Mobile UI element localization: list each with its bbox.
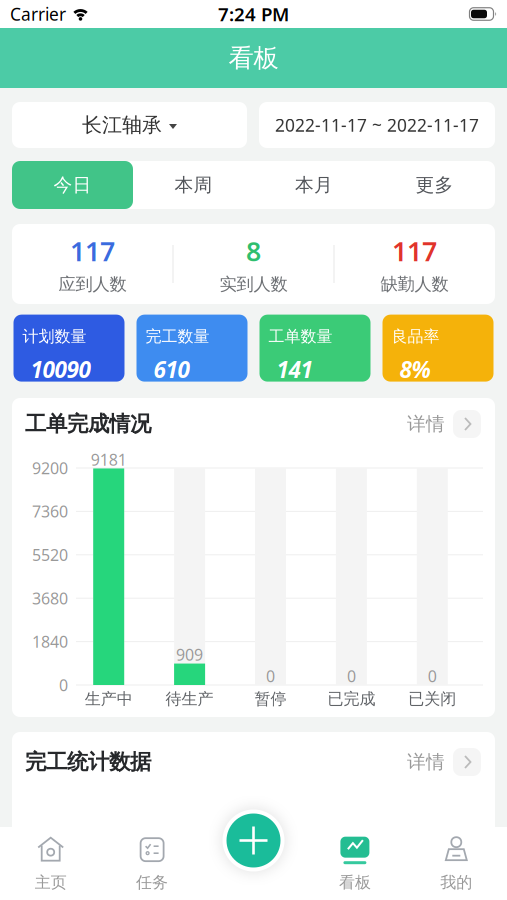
button[interactable]: 新增: [222, 809, 284, 871]
staticText: 已关闭: [408, 689, 456, 709]
staticText: 计划数量: [22, 327, 86, 346]
staticText: 0: [347, 665, 356, 687]
button[interactable]: 主页: [0, 827, 101, 900]
staticText: 已完成: [327, 689, 375, 709]
staticText: 长江轴承: [82, 113, 162, 137]
button[interactable]: 我的: [406, 827, 507, 900]
staticText: 0: [428, 665, 437, 687]
staticText: 看板: [228, 42, 278, 73]
staticText: 应到人数: [58, 274, 126, 295]
staticText: 完工数量: [145, 327, 209, 346]
staticText: 生产中: [85, 689, 133, 709]
button[interactable]: 详情: [407, 410, 481, 438]
staticText: 117: [70, 233, 115, 268]
button[interactable]: 更多: [374, 161, 495, 209]
staticText: 7:24 PM: [218, 2, 289, 26]
staticText: 主页: [35, 873, 67, 892]
button[interactable]: 本周: [133, 161, 254, 209]
staticText: 工单数量: [268, 327, 332, 346]
staticText: 0: [59, 674, 68, 696]
button[interactable]: 本月: [254, 161, 374, 209]
staticText: 详情: [407, 412, 445, 435]
staticText: 9200: [32, 457, 68, 479]
staticText: 8: [246, 233, 261, 268]
staticText: 我的: [440, 873, 472, 892]
staticText: 0: [266, 665, 275, 687]
button[interactable]: 任务: [101, 827, 203, 900]
staticText: 9181: [91, 449, 127, 470]
button[interactable]: 长江轴承: [12, 102, 247, 148]
staticText: 909: [176, 644, 203, 665]
staticText: 任务: [136, 873, 168, 892]
staticText: 117: [392, 233, 437, 268]
staticText: 8%: [399, 354, 430, 384]
staticText: 暂停: [254, 689, 286, 709]
staticText: 今日: [53, 173, 91, 196]
staticText: 610: [153, 354, 189, 384]
button[interactable]: 详情: [407, 748, 481, 776]
staticText: 待生产: [166, 689, 214, 709]
staticText: 实到人数: [219, 274, 287, 295]
staticText: 5520: [32, 544, 68, 565]
staticText: 本周: [174, 173, 212, 196]
staticText: 3680: [32, 588, 68, 609]
staticText: 详情: [407, 750, 445, 773]
staticText: 工单完成情况: [25, 411, 151, 437]
button[interactable]: 看板: [304, 827, 406, 900]
button[interactable]: 2022-11-17 ~ 2022-11-17: [259, 102, 495, 148]
staticText: 良品率: [391, 327, 439, 346]
staticText: 本月: [295, 173, 333, 196]
staticText: 2022-11-17 ~ 2022-11-17: [275, 113, 479, 136]
staticText: 看板: [339, 873, 371, 892]
staticText: 7360: [32, 501, 68, 522]
staticText: 缺勤人数: [380, 274, 448, 295]
staticText: 10090: [30, 354, 90, 384]
staticText: 1840: [32, 631, 68, 652]
staticText: Carrier: [10, 2, 66, 25]
staticText: 完工统计数据: [25, 749, 151, 775]
button[interactable]: 今日: [12, 161, 133, 209]
staticText: 更多: [415, 173, 453, 196]
staticText: 141: [276, 354, 312, 384]
